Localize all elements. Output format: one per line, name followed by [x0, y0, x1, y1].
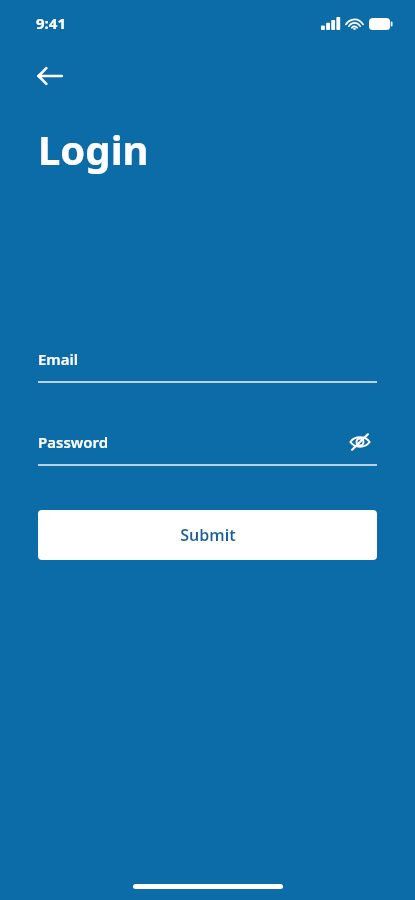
button[interactable]: Email — [38, 344, 377, 383]
staticText: 9:41 — [36, 13, 66, 33]
staticText: Password — [38, 432, 109, 452]
button[interactable]: Show password — [343, 427, 377, 457]
staticText: Login — [38, 122, 149, 176]
staticText: Submit — [180, 524, 236, 546]
button[interactable]: Password — [38, 427, 377, 466]
staticText: Email — [38, 349, 79, 369]
button[interactable]: Back — [28, 54, 72, 98]
button[interactable]: Submit — [38, 510, 377, 560]
